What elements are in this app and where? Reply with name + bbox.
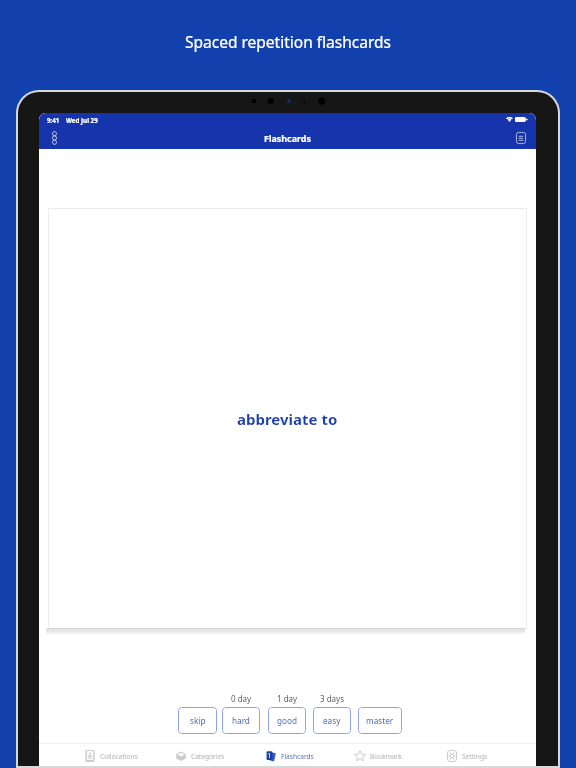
button[interactable]: Collocations bbox=[66, 744, 156, 766]
button[interactable]: More options bbox=[46, 130, 62, 146]
staticText: abbreviate to bbox=[237, 409, 338, 429]
button[interactable]: hard bbox=[222, 707, 260, 734]
staticText: Wed Jul 29 bbox=[66, 116, 98, 124]
staticText: easy bbox=[323, 715, 341, 726]
button[interactable]: easy bbox=[313, 707, 351, 734]
staticText: 9:41 bbox=[47, 116, 60, 124]
staticText: hard bbox=[232, 715, 250, 726]
staticText: good bbox=[277, 715, 297, 726]
staticText: Flashcards bbox=[264, 132, 311, 144]
staticText: 3 days bbox=[320, 693, 344, 704]
button[interactable]: good bbox=[268, 707, 306, 734]
button[interactable]: Flashcards bbox=[245, 744, 334, 766]
staticText: Categories bbox=[191, 752, 225, 761]
staticText: 1 day bbox=[277, 693, 298, 704]
button[interactable]: skip bbox=[178, 707, 217, 734]
staticText: Spaced repetition flashcards bbox=[0, 31, 576, 52]
staticText: master bbox=[366, 715, 394, 726]
button[interactable]: Categories bbox=[156, 744, 245, 766]
button[interactable]: Settings bbox=[423, 744, 512, 766]
staticText: Flashcards bbox=[281, 752, 314, 761]
staticText: skip bbox=[190, 715, 206, 726]
staticText: Bookmark bbox=[370, 752, 402, 761]
staticText: Settings bbox=[462, 752, 488, 761]
button[interactable]: Notes bbox=[513, 130, 529, 146]
staticText: Collocations bbox=[100, 752, 138, 761]
button[interactable]: Bookmark bbox=[334, 744, 423, 766]
button[interactable]: master bbox=[358, 707, 402, 734]
staticText: 0 day bbox=[231, 693, 252, 704]
button[interactable]: abbreviate to bbox=[48, 208, 527, 629]
